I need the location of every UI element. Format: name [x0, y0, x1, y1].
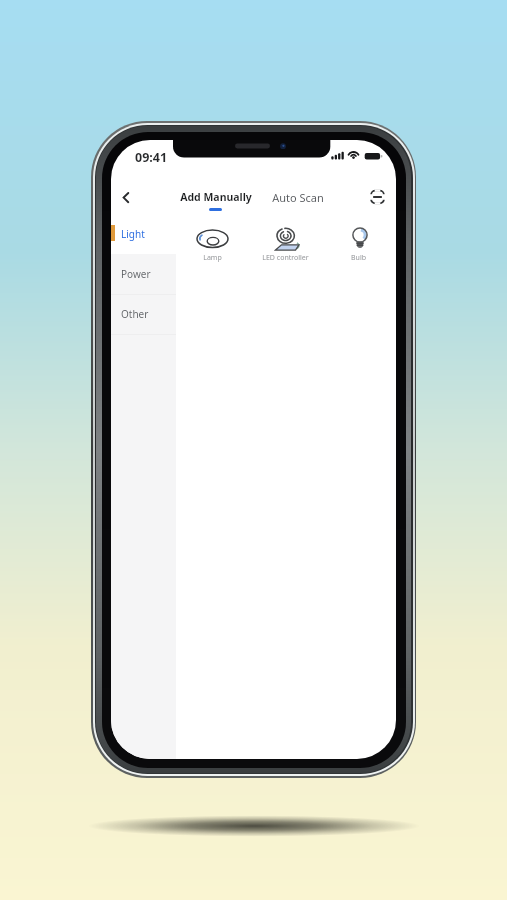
- staticText: LED controller: [262, 253, 309, 263]
- staticText: Lamp: [203, 253, 222, 263]
- staticText: Auto Scan: [272, 190, 324, 205]
- button[interactable]: [366, 186, 389, 209]
- staticText: 09:41: [135, 149, 168, 166]
- button[interactable]: [115, 186, 139, 210]
- button[interactable]: Auto Scan: [263, 186, 333, 208]
- staticText: Power: [121, 267, 151, 281]
- button[interactable]: LED controller: [249, 222, 322, 268]
- button[interactable]: Lamp: [176, 222, 249, 268]
- staticText: Other: [121, 307, 149, 321]
- button[interactable]: Add Manually: [171, 186, 261, 208]
- button[interactable]: Bulb: [322, 222, 395, 268]
- button[interactable]: Other: [111, 294, 176, 334]
- button[interactable]: Light: [111, 214, 176, 254]
- button[interactable]: Power: [111, 254, 176, 294]
- staticText: Add Manually: [180, 190, 252, 204]
- staticText: Light: [121, 227, 145, 241]
- staticText: Bulb: [351, 253, 366, 263]
